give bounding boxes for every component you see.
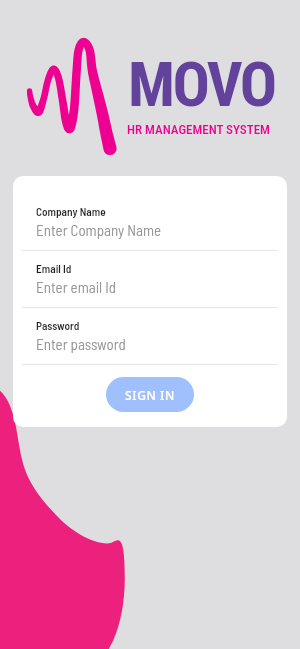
button[interactable]: Enter password [36,335,236,353]
staticText: MOVO [128,48,275,121]
staticText: Company Name [36,205,106,219]
staticText: Password [36,319,80,333]
button[interactable]: SIGN IN [106,377,194,412]
staticText: SIGN IN [125,387,175,403]
button[interactable]: Enter email Id [36,278,236,296]
staticText: Email Id [36,262,72,276]
button[interactable]: Enter Company Name [36,221,236,239]
staticText: HR MANAGEMENT SYSTEM [127,122,270,137]
